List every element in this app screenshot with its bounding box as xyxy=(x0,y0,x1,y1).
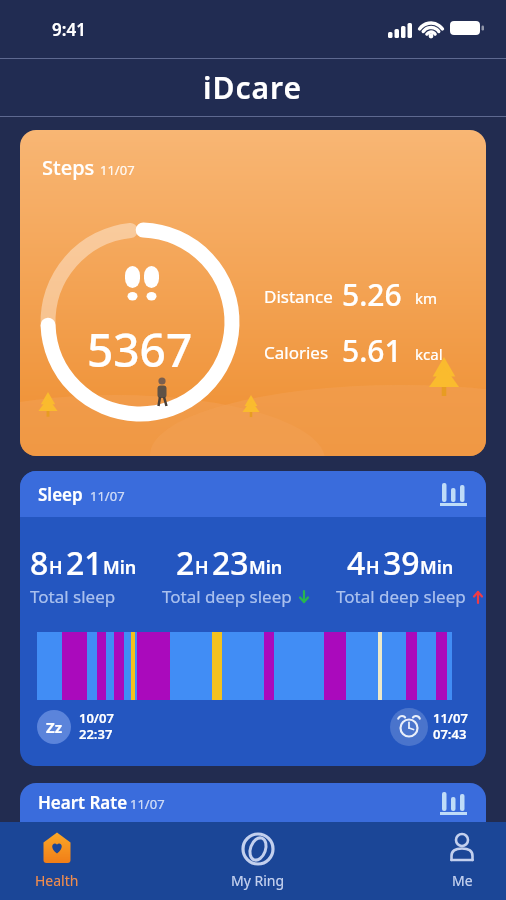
staticText: kcal xyxy=(415,344,443,364)
staticText: Me xyxy=(452,871,473,890)
button[interactable]: Heart Rate xyxy=(20,783,486,822)
staticText: Min xyxy=(249,555,283,580)
staticText: 07:43 xyxy=(433,725,467,743)
staticText: 2 xyxy=(176,541,195,585)
staticText: 10/07 xyxy=(79,709,114,727)
staticText: Calories xyxy=(264,341,329,364)
staticText: Distance xyxy=(264,285,333,308)
staticText: Min xyxy=(103,555,137,580)
staticText: Total deep sleep xyxy=(162,585,292,608)
staticText: 11/07 xyxy=(130,795,165,813)
staticText: Zz xyxy=(46,717,63,737)
staticText: 5367 xyxy=(87,318,193,381)
staticText: Min xyxy=(420,555,454,580)
button[interactable]: My Ring xyxy=(218,832,298,890)
staticText: Total sleep xyxy=(30,585,116,608)
button[interactable] xyxy=(440,482,467,506)
staticText: 23 xyxy=(212,541,249,585)
staticText: My Ring xyxy=(231,871,285,890)
button[interactable]: Steps xyxy=(20,130,486,456)
staticText: 9:41 xyxy=(52,18,86,41)
staticText: Sleep xyxy=(38,483,83,506)
staticText: Heart Rate xyxy=(38,791,128,814)
staticText: 39 xyxy=(383,541,420,585)
staticText: 5.26 xyxy=(342,274,402,315)
staticText: 11/07 xyxy=(100,161,135,179)
staticText: H xyxy=(366,555,380,580)
button[interactable]: Sleep xyxy=(20,471,486,766)
staticText: iDcare xyxy=(203,67,303,108)
staticText: 11/07 xyxy=(90,487,125,505)
button[interactable]: Me xyxy=(422,832,502,890)
staticText: km xyxy=(415,288,438,308)
staticText: Steps xyxy=(42,154,95,181)
staticText: H xyxy=(49,555,63,580)
staticText: 22:37 xyxy=(79,725,113,743)
staticText: H xyxy=(195,555,209,580)
staticText: 8 xyxy=(30,541,49,585)
button[interactable]: Health xyxy=(17,832,97,890)
staticText: 21 xyxy=(66,541,103,585)
staticText: 5.61 xyxy=(342,330,402,371)
staticText: Health xyxy=(35,871,79,890)
staticText: Total deep sleep xyxy=(336,585,466,608)
staticText: 4 xyxy=(347,541,366,585)
staticText: 11/07 xyxy=(433,709,468,727)
